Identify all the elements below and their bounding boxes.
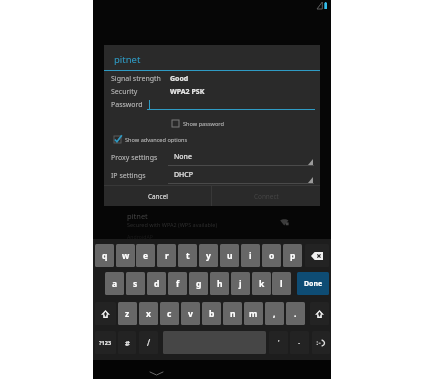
staticText: f — [176, 278, 180, 290]
button[interactable]: Backspace — [305, 244, 329, 267]
button[interactable]: m — [244, 302, 263, 325]
button[interactable]: h — [210, 272, 229, 295]
button[interactable]: x — [139, 302, 158, 325]
staticText: u — [227, 250, 233, 262]
button[interactable]: b — [202, 302, 221, 325]
staticText: None — [174, 152, 192, 162]
button[interactable]: s — [126, 272, 145, 295]
button[interactable]: - — [290, 331, 309, 354]
button[interactable]: q — [95, 244, 114, 267]
button[interactable]: Show password — [172, 118, 225, 129]
staticText: a — [112, 278, 118, 290]
button[interactable]: i — [241, 244, 260, 267]
button[interactable]: w — [116, 244, 135, 267]
button[interactable]: u — [220, 244, 239, 267]
staticText: # — [125, 338, 130, 348]
button[interactable]: d — [147, 272, 166, 295]
staticText: Good — [170, 74, 189, 84]
staticText: g — [196, 278, 202, 290]
button[interactable]: j — [231, 272, 250, 295]
staticText: Done — [304, 279, 323, 289]
staticText: Show advanced options — [125, 136, 188, 144]
staticText: t — [186, 250, 190, 262]
staticText: / — [147, 337, 151, 349]
staticText: x — [146, 308, 151, 320]
button[interactable]: c — [160, 302, 179, 325]
button[interactable]: l — [272, 272, 291, 295]
button[interactable]: o — [262, 244, 281, 267]
staticText: ?123 — [99, 339, 112, 346]
staticText: Security — [111, 87, 138, 97]
staticText: c — [167, 308, 172, 320]
button[interactable]: t — [178, 244, 197, 267]
button[interactable]: None — [168, 148, 314, 166]
staticText: Cancel — [148, 192, 168, 201]
staticText: Proxy settings — [111, 153, 158, 163]
button[interactable]: r — [157, 244, 176, 267]
button[interactable]: ' — [269, 331, 288, 354]
staticText: ' — [278, 338, 280, 348]
button[interactable]: y — [199, 244, 218, 267]
staticText: q — [102, 250, 108, 262]
button[interactable]: . — [286, 302, 305, 325]
staticText: y — [206, 250, 211, 262]
button[interactable]: g — [189, 272, 208, 295]
button[interactable]: p — [283, 244, 302, 267]
staticText: z — [125, 308, 130, 320]
staticText: h — [217, 278, 223, 290]
button[interactable]: Shift — [95, 302, 116, 325]
staticText: n — [230, 308, 236, 320]
button[interactable]: Cancel — [104, 186, 211, 206]
staticText: Signal strength — [111, 74, 161, 84]
staticText: e — [143, 250, 149, 262]
staticText: v — [188, 308, 193, 320]
button[interactable]: v — [181, 302, 200, 325]
staticText: d — [154, 278, 160, 290]
staticText: AndroidAP — [127, 233, 153, 240]
staticText: j — [239, 278, 242, 290]
button[interactable]: a — [105, 272, 124, 295]
staticText: i — [249, 250, 252, 262]
button[interactable]: e — [136, 244, 155, 267]
staticText: m — [249, 308, 258, 320]
staticText: o — [269, 250, 275, 262]
button[interactable]: / — [139, 331, 158, 354]
staticText: p — [290, 250, 296, 262]
button[interactable]: DHCP — [168, 166, 314, 184]
staticText: b — [209, 308, 215, 320]
button[interactable]: Shift — [310, 302, 329, 325]
staticText: w — [122, 250, 130, 262]
button[interactable]: ?123 — [95, 331, 116, 354]
staticText: pitnet — [114, 53, 141, 66]
staticText: . — [294, 308, 297, 320]
staticText: IP settings — [111, 171, 146, 181]
button[interactable]: k — [252, 272, 271, 295]
button[interactable]: n — [223, 302, 242, 325]
staticText: Connect — [254, 192, 279, 201]
staticText: Secured with WPA2 (WPS available) — [127, 221, 218, 228]
staticText: r — [165, 250, 169, 262]
staticText: Password — [111, 100, 143, 110]
button[interactable]: Show advanced options — [114, 134, 188, 145]
staticText: l — [280, 278, 283, 290]
staticText: - — [298, 338, 301, 348]
button[interactable]: Emoticons — [312, 331, 330, 354]
staticText: Show password — [183, 120, 225, 128]
button[interactable]: z — [118, 302, 137, 325]
button[interactable]: Symbols — [118, 331, 136, 354]
staticText: s — [133, 278, 138, 290]
button[interactable]: f — [168, 272, 187, 295]
button[interactable]: Done — [297, 272, 329, 295]
staticText: DHCP — [174, 170, 193, 180]
staticText: pitnet — [127, 211, 148, 221]
button[interactable]: pitnet — [93, 207, 331, 235]
staticText: WPA2 PSK — [170, 87, 205, 97]
button[interactable]: , — [265, 302, 284, 325]
button[interactable]: Hide keyboard — [144, 362, 169, 379]
staticText: k — [259, 278, 265, 290]
staticText: , — [273, 308, 276, 320]
